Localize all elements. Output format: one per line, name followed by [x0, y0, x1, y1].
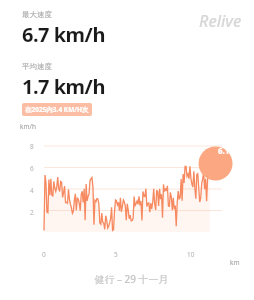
staticText: 最大速度 [22, 10, 52, 19]
staticText: 4 [30, 186, 34, 195]
staticText: 1.7 km/h [22, 73, 105, 100]
staticText: 5 [114, 250, 118, 259]
staticText: 在2025內3.4 KM/H次 [25, 105, 89, 114]
staticText: 10 [187, 250, 195, 259]
staticText: km/h [20, 122, 36, 131]
button[interactable]: 在2025內3.4 KM/H次 [22, 103, 92, 116]
staticText: 2 [30, 208, 34, 217]
button[interactable]: Relive [199, 10, 242, 32]
staticText: 平均速度 [22, 62, 52, 71]
staticText: km [230, 258, 240, 267]
staticText: 8 [30, 142, 34, 151]
staticText: 6.7 km/h [22, 21, 105, 48]
staticText: 6 [30, 164, 34, 173]
staticText: 健行 – 29 十一月 [94, 272, 169, 286]
staticText: 0 [42, 250, 46, 259]
staticText: 6.1 [218, 145, 230, 156]
staticText: Relive [199, 10, 242, 32]
button[interactable]: 健行 – 29 十一月 [22, 272, 240, 300]
